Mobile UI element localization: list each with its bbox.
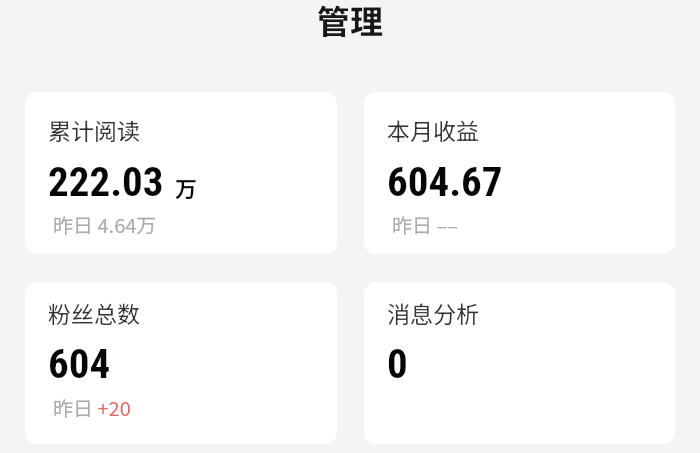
button[interactable]: 累计阅读 [25, 92, 337, 254]
staticText: 昨日 4.64万 [53, 210, 157, 239]
staticText: 累计阅读 [48, 113, 140, 146]
staticText: 222.03 [48, 158, 164, 206]
button[interactable]: 消息分析 [364, 282, 675, 444]
staticText: 本月收益 [387, 113, 479, 146]
staticText: 0 [387, 340, 408, 388]
button[interactable]: 粉丝总数 [25, 282, 337, 444]
staticText: 粉丝总数 [48, 296, 140, 329]
staticText: 消息分析 [387, 296, 479, 329]
staticText: 604.67 [387, 158, 503, 206]
staticText: 管理 [317, 0, 383, 44]
staticText: 604 [48, 340, 111, 388]
staticText: 昨日 +20 [53, 393, 131, 422]
staticText: 昨日 –– [392, 210, 458, 239]
button[interactable]: 本月收益 [364, 92, 675, 254]
staticText: 万 [175, 171, 198, 203]
